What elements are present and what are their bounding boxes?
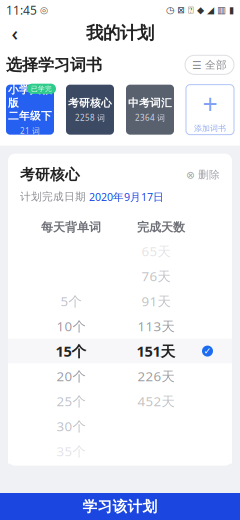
staticText: 35个 <box>56 442 85 460</box>
staticText: 10个 <box>56 317 85 335</box>
button[interactable]: 10个 <box>8 314 232 339</box>
staticText: 每天背单词 <box>41 220 101 234</box>
button[interactable] <box>8 264 232 289</box>
button[interactable]: 添加词书 <box>184 83 236 137</box>
staticText: ✓ <box>203 346 211 356</box>
button[interactable]: 25个 <box>8 389 232 414</box>
button[interactable]: 20个 <box>8 364 232 389</box>
staticText: 计划完成日期 <box>20 190 86 203</box>
staticText: 21 词 <box>20 125 40 136</box>
button[interactable]: 30个 <box>8 414 232 439</box>
staticText: 完成天数 <box>137 220 185 234</box>
staticText: 15个 <box>55 341 86 361</box>
staticText: 151天 <box>136 341 175 361</box>
staticText: 113天 <box>137 317 174 335</box>
staticText: 考研核心 <box>68 96 112 109</box>
staticText: 考研核心 <box>20 166 80 184</box>
staticText: 452天 <box>137 392 174 410</box>
button[interactable]: ☰ 全部 <box>185 55 234 74</box>
staticText: 30个 <box>56 417 85 435</box>
staticText: 中考词汇 <box>128 96 172 109</box>
staticText: 2364 词 <box>135 112 165 123</box>
button[interactable]: ⊗ 删除 <box>186 168 220 181</box>
staticText: ☰ 全部 <box>192 58 227 71</box>
staticText: 2020年9月17日 <box>89 190 164 204</box>
staticText: ⊗ 删除 <box>186 168 220 181</box>
button[interactable]: 5个 <box>8 289 232 314</box>
staticText: 2258 词 <box>75 112 105 123</box>
staticText: 学习该计划 <box>82 497 157 515</box>
staticText: 65天 <box>141 242 170 260</box>
staticText: 25个 <box>56 392 85 410</box>
staticText: 20个 <box>56 367 85 385</box>
staticText: 已学完 <box>31 85 52 93</box>
staticText: 选择学习词书 <box>6 55 102 75</box>
button[interactable]: 中考词汇 <box>124 83 176 137</box>
staticText: 添加词书 <box>194 123 226 133</box>
staticText: 5个 <box>60 292 81 310</box>
staticText: 11:45 <box>6 2 37 18</box>
staticText: 91天 <box>141 292 170 310</box>
staticText: ◎ <box>37 5 48 15</box>
button[interactable]: 返回 <box>2 20 28 46</box>
button[interactable]: 15个 <box>8 339 232 364</box>
staticText: 我的计划 <box>86 22 154 44</box>
staticText: 76天 <box>141 267 170 285</box>
staticText: + <box>202 86 217 121</box>
button[interactable]: 小学人教版 二年级下 <box>4 83 56 137</box>
staticText: ◷ ⊠ ⍰ ◆ ◢ ▥ ▮ <box>166 5 234 15</box>
staticText: 226天 <box>137 367 174 385</box>
button[interactable]: 考研核心 <box>64 83 116 137</box>
staticText: 小学人教版 二年级下 <box>8 83 52 122</box>
button[interactable]: 学习该计划 <box>0 493 240 520</box>
staticText: ‹ <box>11 20 18 46</box>
